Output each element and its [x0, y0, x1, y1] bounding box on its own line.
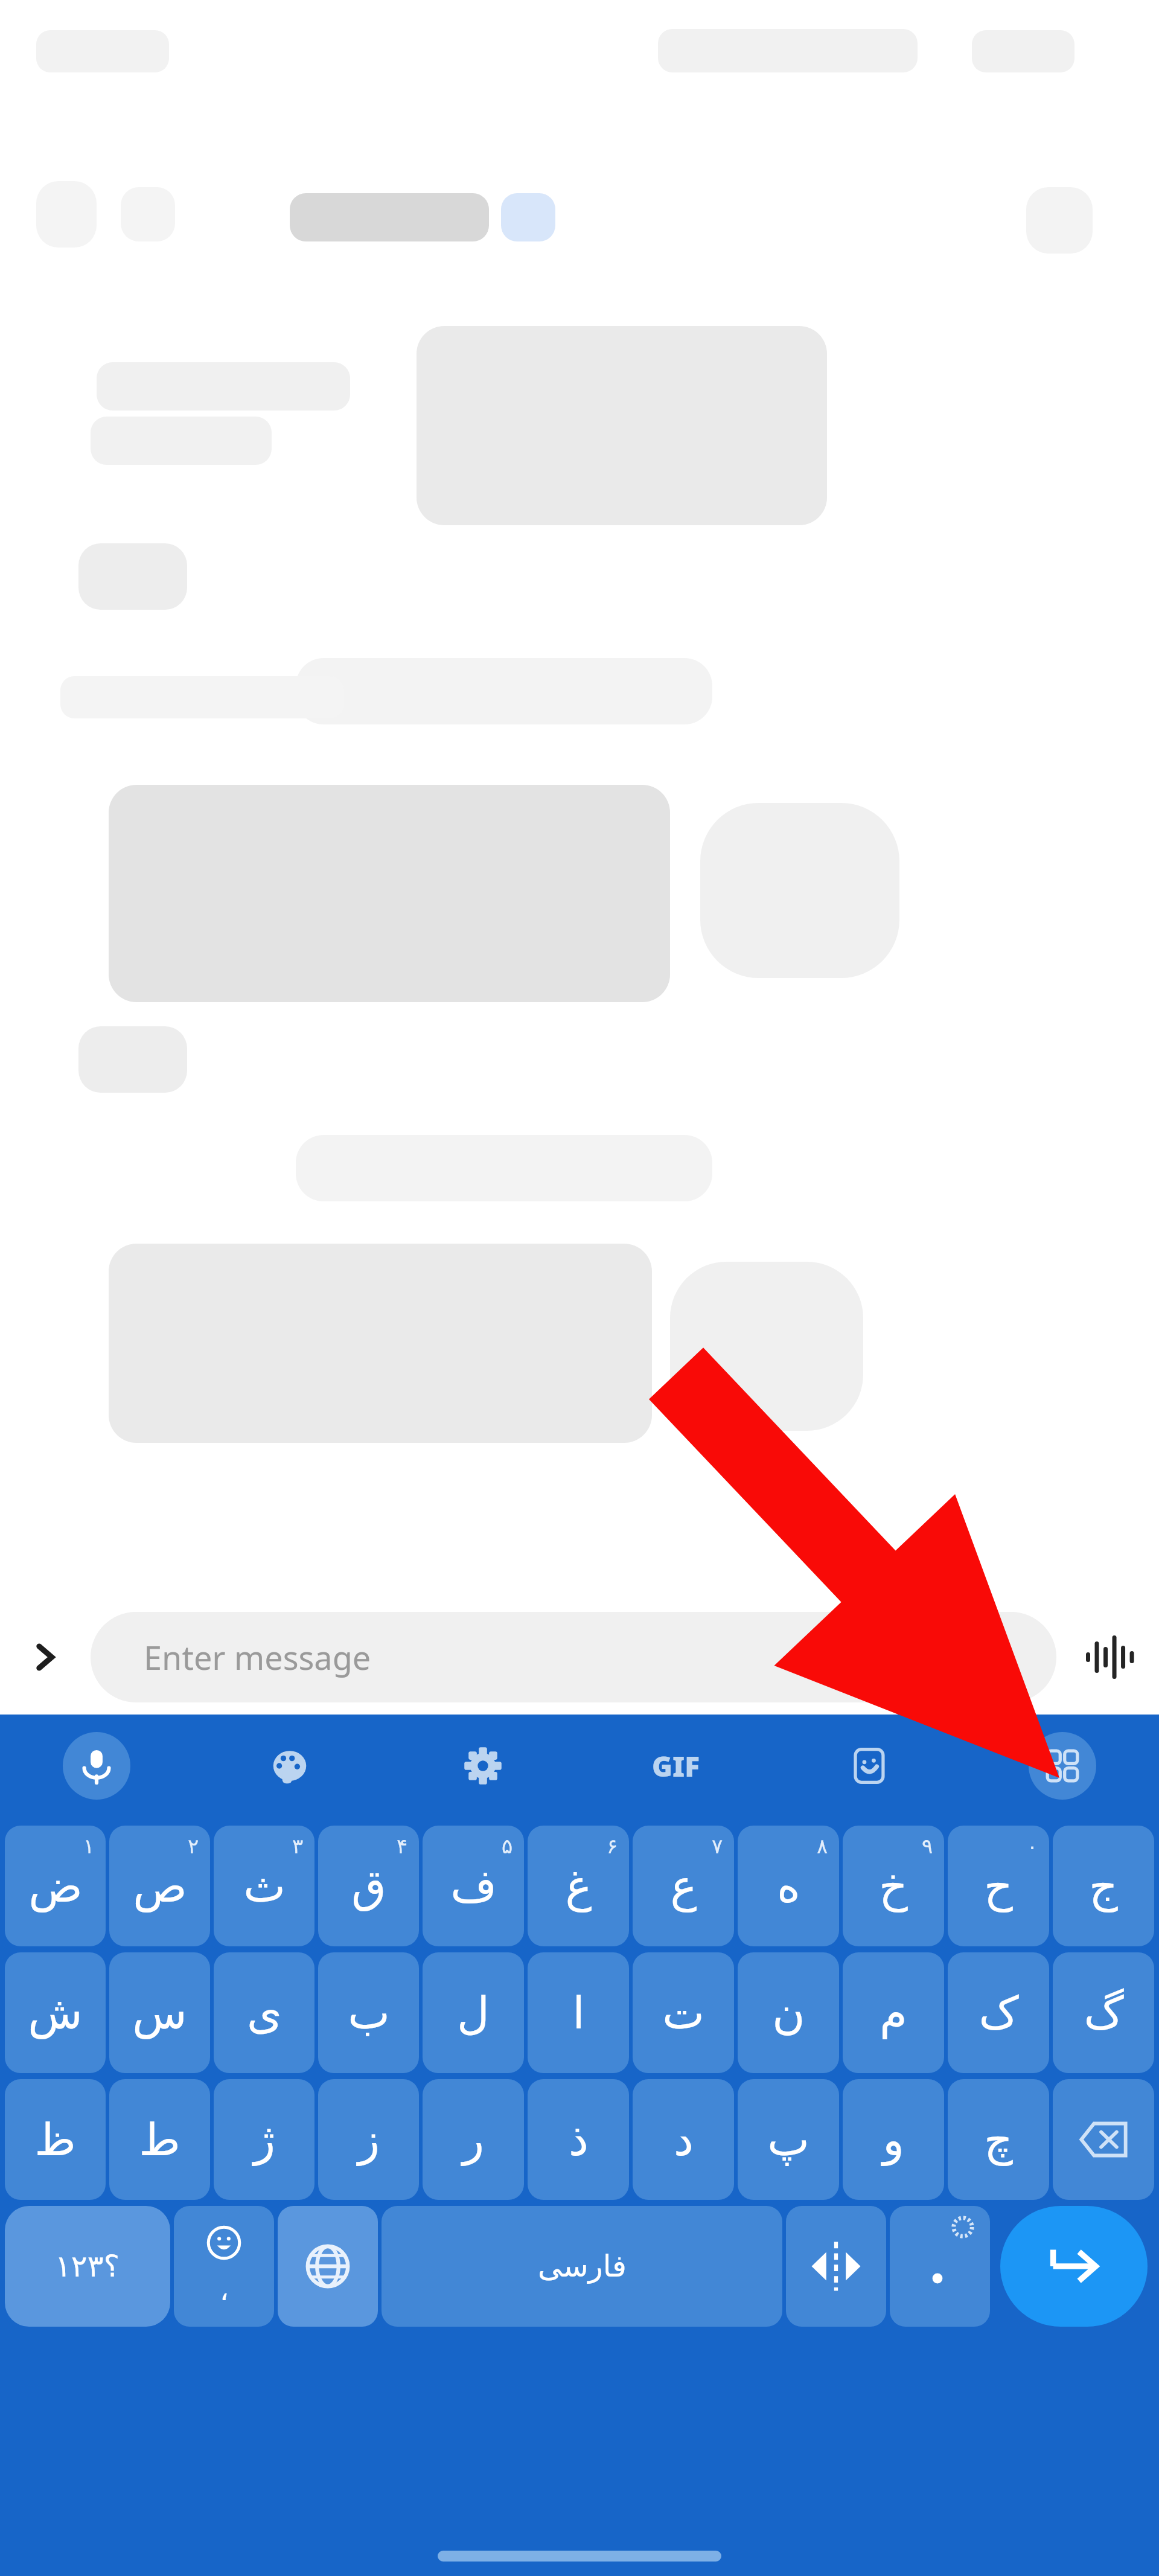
button[interactable]: ق	[318, 1826, 419, 1946]
staticText: ژ	[254, 2114, 275, 2165]
staticText: ه	[777, 1860, 800, 1912]
staticText: ۵	[502, 1834, 513, 1858]
button[interactable]: پ	[738, 2079, 839, 2200]
button[interactable]: خ	[843, 1826, 944, 1946]
button[interactable]: Voice message	[1056, 1600, 1159, 1715]
staticText: پ	[767, 2114, 809, 2165]
staticText: ،	[220, 2274, 229, 2307]
button[interactable]: غ	[528, 1826, 629, 1946]
button[interactable]: ل	[423, 1952, 524, 2073]
staticText: ل	[457, 1987, 490, 2039]
button[interactable]: ک	[948, 1952, 1049, 2073]
button[interactable]: ع	[633, 1826, 734, 1946]
button[interactable]: Emoji	[174, 2206, 274, 2327]
button[interactable]: Settings	[386, 1715, 579, 1817]
staticText: ق	[351, 1860, 386, 1912]
button[interactable]: ی	[214, 1952, 314, 2073]
button[interactable]: More options	[966, 1715, 1159, 1817]
staticText: گ	[1084, 1987, 1124, 2039]
staticText: ۰	[1027, 1834, 1038, 1858]
button[interactable]: ط	[109, 2079, 210, 2200]
button[interactable]: م	[843, 1952, 944, 2073]
staticText: Enter message	[144, 1635, 371, 1680]
button[interactable]: و	[843, 2079, 944, 2200]
button[interactable]: GIF	[579, 1715, 773, 1817]
staticText: چ	[984, 2114, 1013, 2165]
button[interactable]: Voice input	[0, 1715, 193, 1817]
button[interactable]: Move cursor	[786, 2206, 886, 2327]
staticText: ۷	[712, 1834, 723, 1858]
staticText: ذ	[569, 2114, 589, 2165]
button[interactable]: ش	[5, 1952, 106, 2073]
staticText: ۲	[188, 1834, 199, 1858]
staticText: ر	[462, 2114, 484, 2165]
staticText: ث	[243, 1860, 286, 1912]
button[interactable]: ا	[528, 1952, 629, 2073]
staticText: خ	[879, 1860, 908, 1912]
staticText: ت	[662, 1987, 704, 2039]
button[interactable]: ر	[423, 2079, 524, 2200]
button[interactable]: ز	[318, 2079, 419, 2200]
staticText: ص	[133, 1860, 187, 1912]
staticText: ی	[247, 1987, 282, 2039]
staticText: ز	[358, 2114, 380, 2165]
staticText: ط	[139, 2114, 180, 2165]
button[interactable]: ث	[214, 1826, 314, 1946]
button[interactable]: ژ	[214, 2079, 314, 2200]
staticText: ۱	[83, 1834, 95, 1858]
button[interactable]: ف	[423, 1826, 524, 1946]
button[interactable]: ص	[109, 1826, 210, 1946]
staticText: ۶	[607, 1834, 618, 1858]
button[interactable]: Theme	[193, 1715, 386, 1817]
staticText: ض	[28, 1860, 83, 1912]
button[interactable]: ۱۲۳؟	[5, 2206, 170, 2327]
staticText: ش	[28, 1987, 83, 2039]
button[interactable]: ج	[1053, 1826, 1154, 1946]
staticText: فارسی	[538, 2249, 627, 2284]
button[interactable]: ذ	[528, 2079, 629, 2200]
staticText: ۱۲۳؟	[55, 2249, 120, 2284]
button[interactable]	[890, 2206, 990, 2327]
staticText: ظ	[34, 2114, 76, 2165]
staticText: م	[880, 1987, 907, 2039]
staticText: ن	[772, 1987, 805, 2039]
staticText: ا	[572, 1987, 585, 2039]
staticText: ج	[1089, 1860, 1118, 1912]
button[interactable]: ب	[318, 1952, 419, 2073]
staticText: د	[674, 2114, 694, 2165]
button[interactable]: ن	[738, 1952, 839, 2073]
button[interactable]: د	[633, 2079, 734, 2200]
staticText: ع	[670, 1860, 697, 1912]
staticText: ک	[979, 1987, 1019, 2039]
staticText: GIF	[652, 1747, 700, 1785]
staticText: ب	[348, 1987, 390, 2039]
button[interactable]: Backspace	[1053, 2079, 1154, 2200]
button[interactable]: فارسی	[382, 2206, 782, 2327]
button[interactable]: Change language	[278, 2206, 378, 2327]
button[interactable]: ح	[948, 1826, 1049, 1946]
staticText: و	[883, 2114, 904, 2165]
staticText: ۹	[922, 1834, 933, 1858]
button[interactable]: چ	[948, 2079, 1049, 2200]
button[interactable]: ه	[738, 1826, 839, 1946]
staticText: ف	[450, 1860, 497, 1912]
button[interactable]: Enter message	[91, 1612, 1056, 1702]
button[interactable]: س	[109, 1952, 210, 2073]
staticText: س	[132, 1987, 187, 2039]
button[interactable]: Stickers	[773, 1715, 966, 1817]
staticText: ۳	[292, 1834, 304, 1858]
button[interactable]: ض	[5, 1826, 106, 1946]
button[interactable]: گ	[1053, 1952, 1154, 2073]
staticText: ۴	[397, 1834, 408, 1858]
button[interactable]: Send	[994, 2206, 1154, 2327]
staticText: ۸	[817, 1834, 828, 1858]
staticText: غ	[565, 1860, 592, 1912]
button[interactable]: ت	[633, 1952, 734, 2073]
button[interactable]: Expand	[0, 1600, 91, 1715]
staticText: ح	[984, 1860, 1013, 1912]
button[interactable]: ظ	[5, 2079, 106, 2200]
